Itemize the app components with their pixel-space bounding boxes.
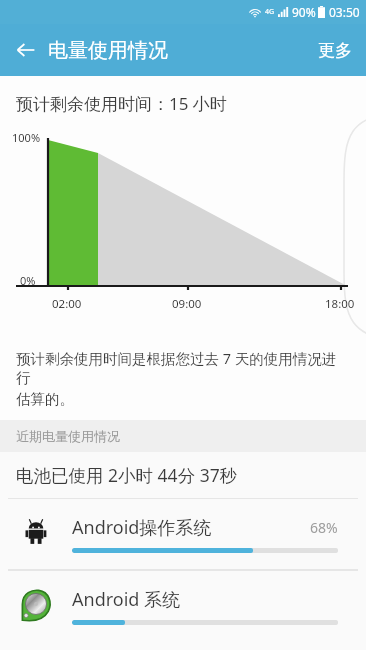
button[interactable]: 更多 [304,30,366,71]
button[interactable]: 电池已使用 2小时 44分 37秒 [0,452,366,498]
button[interactable]: Android操作系统 [0,498,366,569]
staticText: 90% [292,4,316,20]
staticText: 02:00 [52,296,82,312]
button[interactable]: Back [6,30,46,70]
button[interactable]: Android 系统 [0,570,366,641]
staticText: Android 系统 [72,587,181,612]
staticText: 电池已使用 2小时 44分 37秒 [16,463,238,487]
staticText: Android操作系统 [72,515,212,540]
staticText: 更多 [318,40,352,61]
staticText: 09:00 [172,296,202,312]
staticText: 预计剩余使用时间是根据您过去 7 天的使用情况进行 [16,348,346,387]
staticText: 68% [310,518,338,537]
staticText: 18:00 [325,296,355,312]
staticText: 估算的。 [16,390,74,408]
staticText: 100% [12,130,41,145]
staticText: 03:50 [329,4,360,20]
staticText: 0% [20,273,36,288]
staticText: 近期电量使用情况 [16,428,120,444]
staticText: 电量使用情况 [48,38,168,63]
staticText: 预计剩余使用时间：15 小时 [16,92,227,115]
staticText: 4G [265,7,275,17]
